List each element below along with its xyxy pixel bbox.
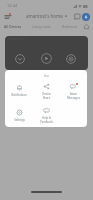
button[interactable]: Account [82, 13, 90, 21]
button[interactable]: Add device [82, 22, 90, 30]
button[interactable]: Bedroom [62, 24, 77, 29]
button[interactable]: Device Share [33, 78, 60, 103]
staticText: All Devices [4, 24, 22, 29]
button[interactable]: Cast [72, 12, 81, 21]
staticText: 12:44 [7, 3, 18, 8]
staticText: Device Share [42, 92, 51, 99]
staticText: Help & Feedback [40, 116, 53, 123]
button[interactable]: Play [41, 53, 52, 64]
button[interactable]: Help & Feedback [33, 103, 60, 127]
button[interactable]: Volume down [15, 54, 25, 64]
button[interactable]: amantost's home [26, 13, 68, 19]
staticText: Atom Messages [67, 92, 80, 99]
button[interactable]: Settings [5, 103, 33, 127]
staticText: Bedroom [62, 24, 77, 29]
button[interactable]: Notification [5, 78, 33, 103]
staticText: Notification [11, 93, 27, 97]
button[interactable]: Atom Messages [60, 78, 87, 103]
staticText: Living room [32, 24, 51, 29]
button[interactable]: Next [66, 54, 76, 64]
button[interactable]: Living room [32, 24, 51, 29]
button[interactable]: All Devices [4, 24, 22, 29]
button[interactable]: Menu [2, 11, 13, 22]
staticText: amantost's home [26, 13, 63, 19]
staticText: Sun [44, 74, 49, 78]
staticText: Settings [14, 118, 25, 122]
